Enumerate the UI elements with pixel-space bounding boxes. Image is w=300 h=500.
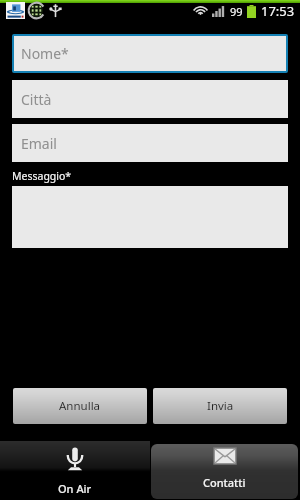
staticText: Messaggio* xyxy=(12,169,72,183)
button[interactable]: Nome* xyxy=(14,36,286,71)
button[interactable]: On Air xyxy=(0,441,150,500)
staticText: Email xyxy=(21,134,57,153)
staticText: On Air xyxy=(58,481,92,496)
staticText: 99 xyxy=(230,4,243,19)
button[interactable]: Annulla xyxy=(13,388,147,424)
button[interactable]: Invia xyxy=(153,388,287,424)
staticText: Annulla xyxy=(59,398,101,414)
button[interactable]: Città xyxy=(12,80,288,118)
staticText: Città xyxy=(21,90,52,109)
staticText: Invia xyxy=(207,398,234,414)
button[interactable]: Email xyxy=(12,124,288,162)
other: Contatti xyxy=(214,448,236,464)
other: On Air xyxy=(66,447,84,471)
staticText: Contatti xyxy=(203,475,246,490)
staticText: 17:53 xyxy=(261,2,295,20)
staticText: Nome* xyxy=(21,44,69,63)
button[interactable]: Contatti xyxy=(151,444,298,499)
